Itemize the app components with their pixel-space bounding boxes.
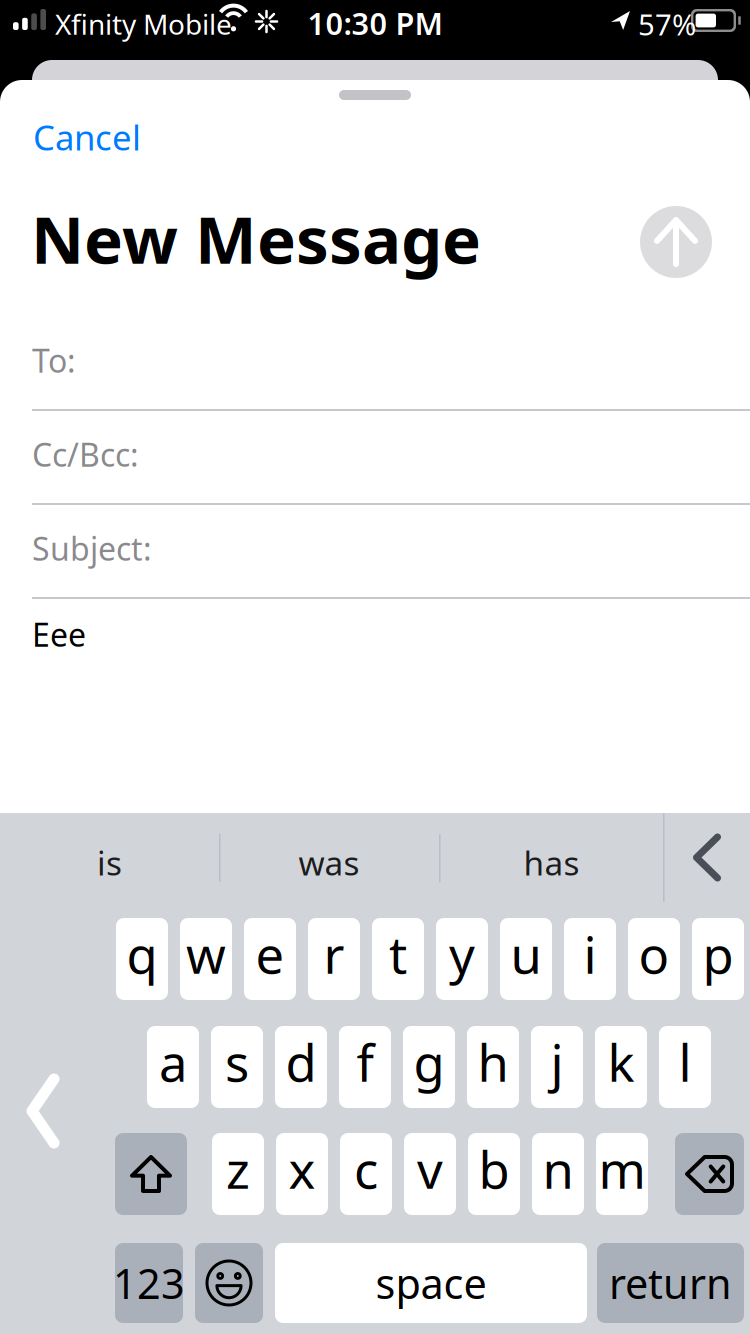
staticText: z	[226, 1135, 250, 1203]
staticText: l	[678, 1028, 691, 1096]
button[interactable]: Expand keyboard	[4, 1056, 82, 1166]
button[interactable]: t	[372, 918, 424, 1000]
button[interactable]: is	[0, 813, 219, 912]
staticText: b	[478, 1135, 509, 1203]
staticText: m	[598, 1135, 645, 1203]
staticText: space	[375, 1256, 486, 1310]
button[interactable]: o	[628, 918, 680, 1000]
button[interactable]: j	[531, 1026, 583, 1108]
staticText: Eee	[32, 613, 86, 655]
staticText: j	[550, 1028, 563, 1096]
button[interactable]: f	[339, 1026, 391, 1108]
button[interactable]: p	[692, 918, 744, 1000]
button[interactable]: s	[211, 1026, 263, 1108]
button[interactable]: was	[219, 813, 439, 912]
staticText: y	[449, 920, 475, 988]
staticText: f	[356, 1028, 373, 1096]
button[interactable]: e	[244, 918, 296, 1000]
button[interactable]: k	[595, 1026, 647, 1108]
button[interactable]: return	[597, 1243, 744, 1323]
button[interactable]: d	[275, 1026, 327, 1108]
staticText: c	[354, 1135, 378, 1203]
staticText: r	[323, 920, 344, 988]
staticText: u	[510, 920, 541, 988]
staticText: h	[477, 1028, 508, 1096]
staticText: To:	[32, 339, 76, 381]
button[interactable]: m	[596, 1133, 648, 1215]
button[interactable]: Delete	[675, 1133, 744, 1215]
button[interactable]: 123	[115, 1243, 183, 1323]
button[interactable]: Collapse keyboard	[664, 813, 750, 902]
staticText: s	[225, 1028, 249, 1096]
button[interactable]: has	[439, 813, 664, 912]
staticText: is	[97, 840, 122, 885]
staticText: Subject:	[32, 527, 152, 569]
button[interactable]: y	[436, 918, 488, 1000]
staticText: e	[255, 920, 284, 988]
staticText: New Message	[31, 195, 481, 282]
button[interactable]: i	[564, 918, 616, 1000]
button[interactable]: Cancel	[33, 112, 203, 162]
staticText: Cc/Bcc:	[32, 433, 139, 475]
staticText: i	[583, 920, 596, 988]
button[interactable]: x	[276, 1133, 328, 1215]
button[interactable]: Send	[640, 206, 712, 278]
button[interactable]: h	[467, 1026, 519, 1108]
staticText: v	[417, 1135, 443, 1203]
staticText: q	[126, 920, 157, 988]
staticText: 57%	[638, 4, 696, 43]
staticText: a	[159, 1028, 187, 1096]
button[interactable]: u	[500, 918, 552, 1000]
button[interactable]: a	[147, 1026, 199, 1108]
staticText: n	[542, 1135, 573, 1203]
staticText: was	[298, 840, 359, 885]
staticText: return	[609, 1256, 732, 1310]
staticText: g	[413, 1028, 444, 1096]
staticText: x	[288, 1135, 315, 1203]
staticText: o	[638, 920, 669, 988]
button[interactable]: w	[180, 918, 232, 1000]
staticText: 10:30 PM	[307, 3, 442, 43]
button[interactable]: Emoji keyboard	[195, 1243, 263, 1323]
button[interactable]: l	[659, 1026, 711, 1108]
button[interactable]: q	[116, 918, 168, 1000]
button[interactable]: n	[532, 1133, 584, 1215]
button[interactable]: z	[212, 1133, 264, 1215]
button[interactable]: c	[340, 1133, 392, 1215]
staticText: t	[389, 920, 407, 988]
button[interactable]: r	[308, 918, 360, 1000]
button[interactable]: v	[404, 1133, 456, 1215]
staticText: w	[186, 920, 226, 988]
button[interactable]: b	[468, 1133, 520, 1215]
button[interactable]: g	[403, 1026, 455, 1108]
staticText: k	[607, 1028, 634, 1096]
staticText: d	[285, 1028, 316, 1096]
staticText: 123	[113, 1256, 185, 1310]
staticText: Xfinity Mobile	[55, 5, 232, 43]
staticText: p	[702, 920, 733, 988]
staticText: has	[523, 840, 579, 885]
staticText: Cancel	[33, 114, 141, 160]
button[interactable]: Shift	[115, 1133, 187, 1215]
button[interactable]: space	[275, 1243, 587, 1323]
